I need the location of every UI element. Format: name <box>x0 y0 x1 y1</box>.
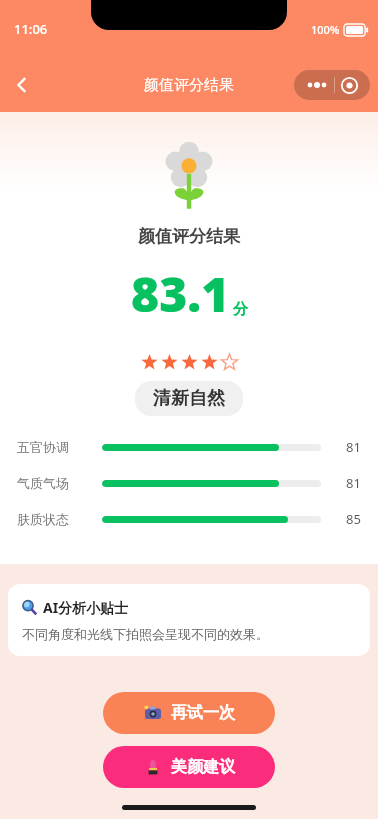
staticText: 颜值评分结果 <box>144 76 234 95</box>
staticText: 气质气场 <box>17 475 93 491</box>
staticText: 再试一次 <box>171 703 235 723</box>
staticText: 81 <box>346 474 361 492</box>
staticText: 清新自然 <box>153 387 225 410</box>
staticText: AI分析小贴士 <box>43 598 129 617</box>
staticText: 85 <box>346 510 361 528</box>
button[interactable]: 再试一次 <box>103 692 275 734</box>
staticText: 83.1 <box>131 261 230 326</box>
button[interactable]: 美颜建议 <box>103 746 275 788</box>
staticText: 81 <box>346 438 361 456</box>
staticText: 颜值评分结果 <box>138 226 240 247</box>
button[interactable]: Back <box>0 63 44 107</box>
staticText: 肤质状态 <box>17 511 93 527</box>
staticText: 不同角度和光线下拍照会呈现不同的效果。 <box>22 626 269 642</box>
staticText: 11:06 <box>14 20 48 38</box>
staticText: 100% <box>311 22 340 37</box>
staticText: 美颜建议 <box>171 757 235 777</box>
staticText: 五官协调 <box>17 439 93 455</box>
button[interactable]: Menu <box>294 70 370 100</box>
staticText: 分 <box>233 300 248 319</box>
